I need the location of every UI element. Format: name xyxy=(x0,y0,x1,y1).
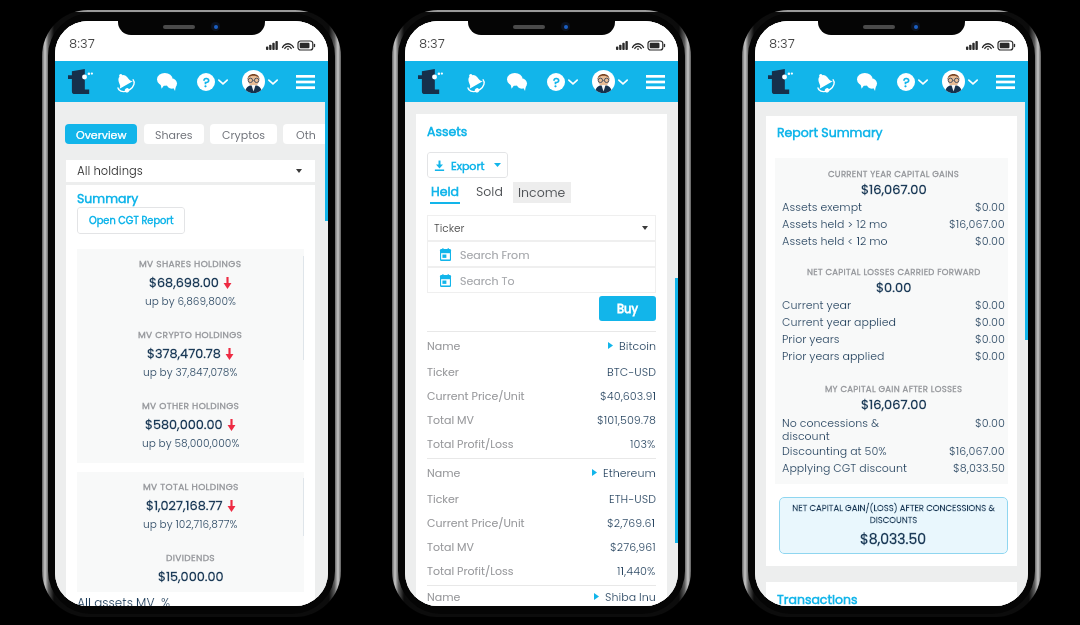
button[interactable]: Notifications xyxy=(111,69,137,95)
button[interactable]: Account xyxy=(942,70,978,93)
staticText: Bitcoin xyxy=(619,338,656,353)
staticText: Search To xyxy=(460,273,515,288)
staticText: $40,603.91 xyxy=(600,388,656,403)
button[interactable]: Notifications xyxy=(461,69,487,95)
staticText: MV SHARES HOLDINGS xyxy=(139,258,242,271)
staticText: NET CAPITAL GAIN/(LOSS) AFTER CONCESSION… xyxy=(792,502,995,526)
staticText: Current year xyxy=(782,297,852,312)
staticText: Name xyxy=(427,589,461,604)
staticText: MV TOTAL HOLDINGS xyxy=(143,481,239,494)
staticText: $16,067.00 xyxy=(949,443,1005,458)
staticText: $0.00 xyxy=(876,278,912,296)
button[interactable]: Account xyxy=(592,70,628,93)
staticText: $2,769.61 xyxy=(607,515,656,530)
staticText: up by 37,847,078% xyxy=(143,365,238,380)
staticText: Held xyxy=(431,183,459,200)
button[interactable]: Home xyxy=(67,68,93,95)
button[interactable]: Open CGT Report xyxy=(77,207,185,234)
staticText: Income xyxy=(518,184,566,201)
staticText: $15,000.00 xyxy=(158,568,224,586)
staticText: BTC-USD xyxy=(607,364,656,379)
staticText: Ticker xyxy=(427,491,459,506)
staticText: $0.00 xyxy=(975,233,1005,248)
staticText: Discounting at 50% xyxy=(782,443,887,458)
staticText: $0.00 xyxy=(975,314,1005,329)
staticText: NET CAPITAL LOSSES CARRIED FORWARD xyxy=(807,266,981,278)
staticText: MV OTHER HOLDINGS xyxy=(142,400,240,413)
staticText: Assets held < 12 mo xyxy=(782,233,888,248)
staticText: MV CRYPTO HOLDINGS xyxy=(138,329,243,342)
staticText: $8,033.50 xyxy=(860,529,927,549)
staticText: Total Profit/Loss xyxy=(427,436,514,451)
staticText: $16,067.00 xyxy=(861,395,927,413)
staticText: All assets MV % xyxy=(77,594,171,606)
button[interactable]: Cryptos xyxy=(210,124,277,144)
staticText: Current Price/Unit xyxy=(427,515,525,530)
staticText: 8:37 xyxy=(769,34,795,52)
button[interactable]: Help xyxy=(897,73,928,91)
staticText: Total Profit/Loss xyxy=(427,563,514,578)
staticText: $16,067.00 xyxy=(861,180,927,198)
button[interactable]: Export xyxy=(427,152,508,178)
staticText: Name xyxy=(427,465,461,480)
button[interactable]: Overview xyxy=(65,124,137,144)
staticText: $378,470.78 xyxy=(147,345,221,363)
button[interactable]: Sold xyxy=(472,182,507,201)
staticText: $0.00 xyxy=(975,331,1005,346)
staticText: Applying CGT discount xyxy=(782,460,907,475)
staticText: Shiba Inu xyxy=(605,589,656,604)
staticText: 8:37 xyxy=(69,34,95,52)
button[interactable]: Buy xyxy=(599,296,656,321)
button[interactable]: Menu xyxy=(993,70,1017,94)
staticText: $0.00 xyxy=(975,415,1005,430)
staticText: $1,027,168.77 xyxy=(146,497,223,515)
button[interactable]: Account xyxy=(242,70,278,93)
staticText: Name xyxy=(427,338,461,353)
staticText: Summary xyxy=(77,190,139,207)
staticText: ? xyxy=(203,73,210,91)
button[interactable]: Home xyxy=(767,68,793,95)
button[interactable]: Home xyxy=(417,68,443,95)
staticText: up by 6,869,800% xyxy=(145,294,236,309)
staticText: Ticker xyxy=(427,364,459,379)
button[interactable]: Income xyxy=(513,182,571,203)
staticText: Shares xyxy=(155,127,193,142)
staticText: Buy xyxy=(617,301,638,317)
staticText: $101,509.78 xyxy=(597,412,656,427)
staticText: Search From xyxy=(460,247,530,262)
button[interactable]: Search From xyxy=(427,241,656,267)
staticText: $0.00 xyxy=(975,348,1005,363)
staticText: MY CAPITAL GAIN AFTER LOSSES xyxy=(825,383,963,395)
staticText: Ethereum xyxy=(603,465,656,480)
button[interactable]: Search To xyxy=(427,267,656,293)
button[interactable]: Help xyxy=(547,73,578,91)
staticText: $580,000.00 xyxy=(145,416,223,434)
staticText: Assets xyxy=(427,123,468,140)
button[interactable]: Messages xyxy=(854,69,880,95)
staticText: Open CGT Report xyxy=(89,214,174,228)
button[interactable]: Menu xyxy=(293,70,317,94)
staticText: Export xyxy=(451,158,485,173)
staticText: Transactions xyxy=(777,591,858,606)
button[interactable]: Notifications xyxy=(811,69,837,95)
staticText: Assets exempt xyxy=(782,199,863,214)
button[interactable]: All holdings xyxy=(66,160,315,182)
staticText: Prior years xyxy=(782,331,840,346)
staticText: $0.00 xyxy=(975,297,1005,312)
button[interactable]: Oth xyxy=(283,124,328,144)
button[interactable]: Help xyxy=(197,73,228,91)
button[interactable]: NET CAPITAL GAIN/(LOSS) AFTER CONCESSION… xyxy=(779,497,1008,554)
button[interactable]: Shares xyxy=(144,124,204,144)
staticText: $68,698.00 xyxy=(149,274,219,292)
button[interactable]: Menu xyxy=(643,70,667,94)
staticText: 11,440% xyxy=(617,563,656,578)
staticText: CURRENT YEAR CAPITAL GAINS xyxy=(828,168,960,180)
staticText: Report Summary xyxy=(777,124,883,141)
button[interactable]: Messages xyxy=(504,69,530,95)
staticText: ? xyxy=(903,73,910,91)
button[interactable]: Held xyxy=(427,182,463,204)
button[interactable]: Messages xyxy=(154,69,180,95)
staticText: Total MV xyxy=(427,539,474,554)
button[interactable]: Ticker xyxy=(427,215,656,241)
staticText: Prior years applied xyxy=(782,348,885,363)
